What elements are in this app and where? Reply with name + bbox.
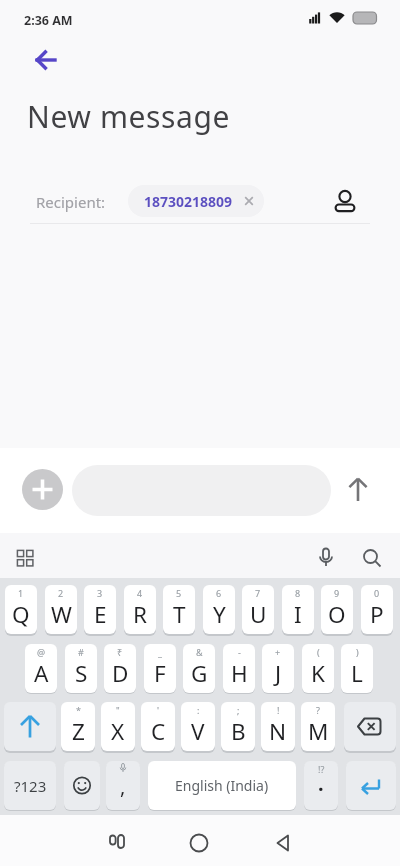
button[interactable] [22, 469, 63, 510]
button[interactable] [331, 186, 359, 216]
button[interactable]: 3 [84, 585, 116, 634]
button[interactable]: 5 [163, 585, 195, 634]
button[interactable]: - [223, 644, 255, 693]
button[interactable]: ₹ [104, 644, 136, 693]
button[interactable]: ; [221, 702, 255, 751]
button[interactable]: 7 [242, 585, 274, 634]
button[interactable] [103, 828, 133, 858]
staticText: O [328, 599, 346, 630]
staticText: # [78, 646, 84, 658]
staticText: ; [237, 704, 240, 716]
button[interactable]: @ [25, 644, 57, 693]
staticText: 4 [137, 587, 143, 599]
button[interactable]: 8 [282, 585, 314, 634]
button[interactable]: & [183, 644, 215, 693]
staticText: P [370, 599, 384, 630]
staticText: Y [213, 599, 226, 630]
button[interactable]: ) [341, 644, 373, 693]
staticText: 5 [176, 587, 182, 599]
staticText: ' [157, 704, 160, 716]
staticText: ( [317, 646, 320, 658]
staticText: R [133, 599, 147, 630]
button[interactable] [28, 42, 64, 78]
staticText: 18730218809 [144, 192, 233, 211]
staticText: 2 [58, 587, 64, 599]
button[interactable]: !? [304, 761, 338, 810]
button[interactable]: _ [144, 644, 176, 693]
button[interactable]: " [101, 702, 135, 751]
button[interactable]: 4 [124, 585, 156, 634]
staticText: Z [72, 716, 85, 747]
staticText: !? [318, 763, 325, 775]
staticText: ₹ [117, 646, 123, 658]
button[interactable] [11, 544, 39, 572]
staticText: ! [277, 704, 280, 716]
staticText: L [351, 658, 363, 689]
button[interactable]: ? [301, 702, 335, 751]
staticText: V [191, 716, 205, 747]
staticText: Recipient: [36, 192, 106, 212]
staticText: 0 [374, 587, 380, 599]
staticText: 6 [216, 587, 222, 599]
staticText: E [94, 599, 107, 630]
staticText: W [51, 599, 72, 630]
button[interactable] [344, 702, 396, 751]
button[interactable]: 9 [321, 585, 353, 634]
staticText: G [191, 658, 208, 689]
button[interactable]: English (India) [148, 761, 296, 810]
staticText: , [120, 773, 126, 800]
button[interactable]: ?123 [4, 761, 56, 810]
staticText: U [250, 599, 267, 630]
button[interactable]: , [106, 761, 140, 810]
staticText: I [294, 599, 302, 630]
button[interactable]: ( [302, 644, 334, 693]
staticText: - [238, 646, 241, 658]
staticText: : [197, 704, 200, 716]
staticText: English (India) [175, 776, 269, 795]
staticText: _ [158, 646, 162, 658]
button[interactable]: * [61, 702, 95, 751]
button[interactable]: 18730218809 [128, 185, 264, 217]
staticText: X [111, 716, 125, 747]
button[interactable] [64, 761, 100, 810]
staticText: F [154, 658, 166, 689]
staticText: S [75, 658, 88, 689]
staticText: K [311, 658, 325, 689]
staticText: N [269, 716, 287, 747]
staticText: 7 [255, 587, 261, 599]
button[interactable]: 0 [361, 585, 393, 634]
button[interactable]: 2 [45, 585, 77, 634]
button[interactable] [358, 544, 386, 572]
staticText: 8 [295, 587, 301, 599]
staticText: C [151, 716, 166, 747]
staticText: + [275, 646, 281, 658]
staticText: * [76, 704, 81, 716]
staticText: 3 [97, 587, 103, 599]
button[interactable] [312, 544, 340, 572]
staticText: @ [37, 646, 46, 658]
staticText: H [231, 658, 248, 689]
staticText: & [196, 646, 203, 658]
staticText: 2:36 AM [24, 12, 73, 29]
staticText: A [34, 658, 49, 689]
button[interactable] [346, 761, 396, 810]
button[interactable] [343, 475, 373, 505]
staticText: 1 [18, 587, 24, 599]
button[interactable]: 1 [5, 585, 37, 634]
button[interactable]: : [181, 702, 215, 751]
staticText: ) [356, 646, 359, 658]
button[interactable] [4, 702, 56, 751]
button[interactable] [268, 828, 298, 858]
button[interactable]: ! [261, 702, 295, 751]
button[interactable]: # [65, 644, 97, 693]
staticText: B [231, 716, 246, 747]
staticText: T [173, 599, 186, 630]
button[interactable]: ' [141, 702, 175, 751]
button[interactable] [184, 828, 214, 858]
staticText: M [308, 716, 329, 747]
button[interactable]: 6 [203, 585, 235, 634]
button[interactable]: + [262, 644, 294, 693]
staticText: Q [12, 599, 30, 630]
staticText: J [275, 658, 282, 689]
